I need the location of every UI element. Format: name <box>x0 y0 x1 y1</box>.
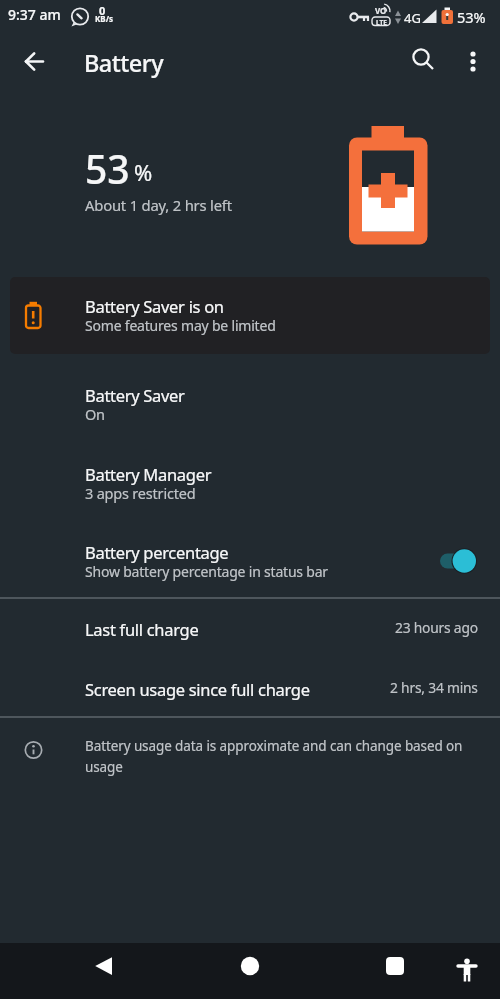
staticText: 53% <box>457 7 486 27</box>
staticText: Battery usage data is approximate and ca… <box>85 737 482 776</box>
staticText: VO <box>375 5 387 16</box>
staticText: 3 apps restricted <box>85 483 196 503</box>
staticText: On <box>85 404 105 424</box>
staticText: 2 hrs, 34 mins <box>390 678 478 697</box>
staticText: 9:37 am <box>8 5 61 24</box>
staticText: About 1 day, 2 hrs left <box>85 195 232 215</box>
staticText: 4G <box>404 9 421 27</box>
staticText: Battery Manager <box>85 463 212 485</box>
staticText: KB/s <box>95 13 113 24</box>
staticText: Battery Saver <box>85 384 185 406</box>
staticText: Screen usage since full charge <box>85 678 310 700</box>
staticText: 0 <box>99 3 106 18</box>
staticText: Show battery percentage in status bar <box>85 562 328 581</box>
staticText: % <box>134 157 153 187</box>
staticText: Battery Saver is on <box>85 295 224 317</box>
staticText: Battery percentage <box>85 541 229 563</box>
staticText: Some features may be limited <box>85 316 276 335</box>
staticText: Battery <box>84 47 164 79</box>
staticText: Last full charge <box>85 618 199 640</box>
staticText: 23 hours ago <box>395 618 478 637</box>
staticText: 53 <box>85 142 130 195</box>
staticText: LTE <box>376 18 387 27</box>
